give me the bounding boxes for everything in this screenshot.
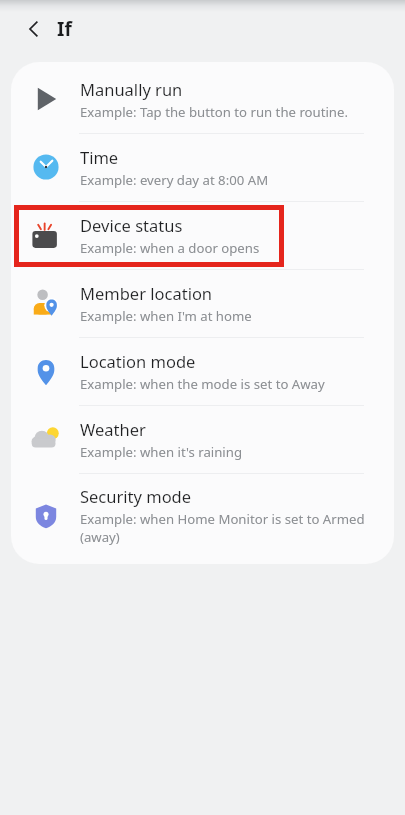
staticText: Weather [80,418,146,440]
button[interactable]: Member location [11,270,394,337]
staticText: Manually run [80,78,183,100]
button[interactable]: Location mode [11,338,394,405]
button[interactable]: Manually run [11,66,394,133]
staticText: Example: when the mode is set to Away [80,375,325,393]
staticText: Example: every day at 8:00 AM [80,171,269,189]
button[interactable]: Weather [11,406,394,473]
staticText: If [57,16,72,42]
staticText: Time [80,146,119,168]
button[interactable]: Back [14,9,54,49]
staticText: Example: when I'm at home [80,307,252,325]
staticText: Example: Tap the button to run the routi… [80,103,348,121]
button[interactable]: Security mode [11,474,394,560]
staticText: Example: when Home Monitor is set to Arm… [80,510,365,546]
staticText: Example: when a door opens [80,239,260,257]
staticText: Device status [80,214,183,236]
staticText: Example: when it's raining [80,443,243,461]
button[interactable]: Time [11,134,394,201]
staticText: Security mode [80,485,192,507]
staticText: Location mode [80,350,196,372]
staticText: Member location [80,282,213,304]
button[interactable]: Device status [11,202,394,269]
